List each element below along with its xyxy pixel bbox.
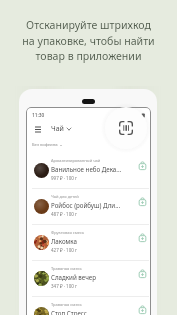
staticText: 427 ₽ · 100 г [51,247,77,253]
staticText: 487 ₽ · 100 г [51,211,77,217]
button[interactable]: Add to cart [136,303,149,315]
staticText: Чай [51,124,64,134]
staticText: Травяная смесь [51,302,82,307]
button[interactable]: Фруктовая смесь [26,225,151,261]
staticText: Травяная смесь [51,266,82,271]
staticText: Отсканируйте штрихкод на упаковке, чтобы… [8,18,169,63]
button[interactable]: Add to cart [136,231,149,244]
button[interactable]: Menu [32,123,44,135]
staticText: Сладкий вечер [51,273,97,281]
staticText: Ройбос (ройбуш) Дли... [51,201,121,209]
button[interactable]: Ароматизированный чай [26,153,151,189]
button[interactable]: Add to cart [136,159,149,172]
staticText: Ароматизированный чай [51,158,101,163]
staticText: Чай для детей [51,194,79,199]
button[interactable]: Травяная смесь [26,261,151,297]
button[interactable]: Add to cart [136,267,149,280]
staticText: Ванильное небо Дека... [51,165,122,173]
staticText: Стоп Стресс [51,309,87,315]
staticText: 997 ₽ · 100 г [51,175,77,181]
button[interactable]: Scan barcode [105,107,147,149]
button[interactable]: Травяная смесь [26,297,151,315]
staticText: Фруктовая смесь [51,230,85,235]
button[interactable]: Чай [51,124,71,134]
staticText: 11:30 [32,112,45,119]
staticText: Без кофеина [32,142,58,148]
button[interactable]: Add to cart [136,195,149,208]
button[interactable]: Чай для детей [26,189,151,225]
staticText: Лакомка [51,237,77,245]
staticText: 347 ₽ · 100 г [51,283,77,289]
